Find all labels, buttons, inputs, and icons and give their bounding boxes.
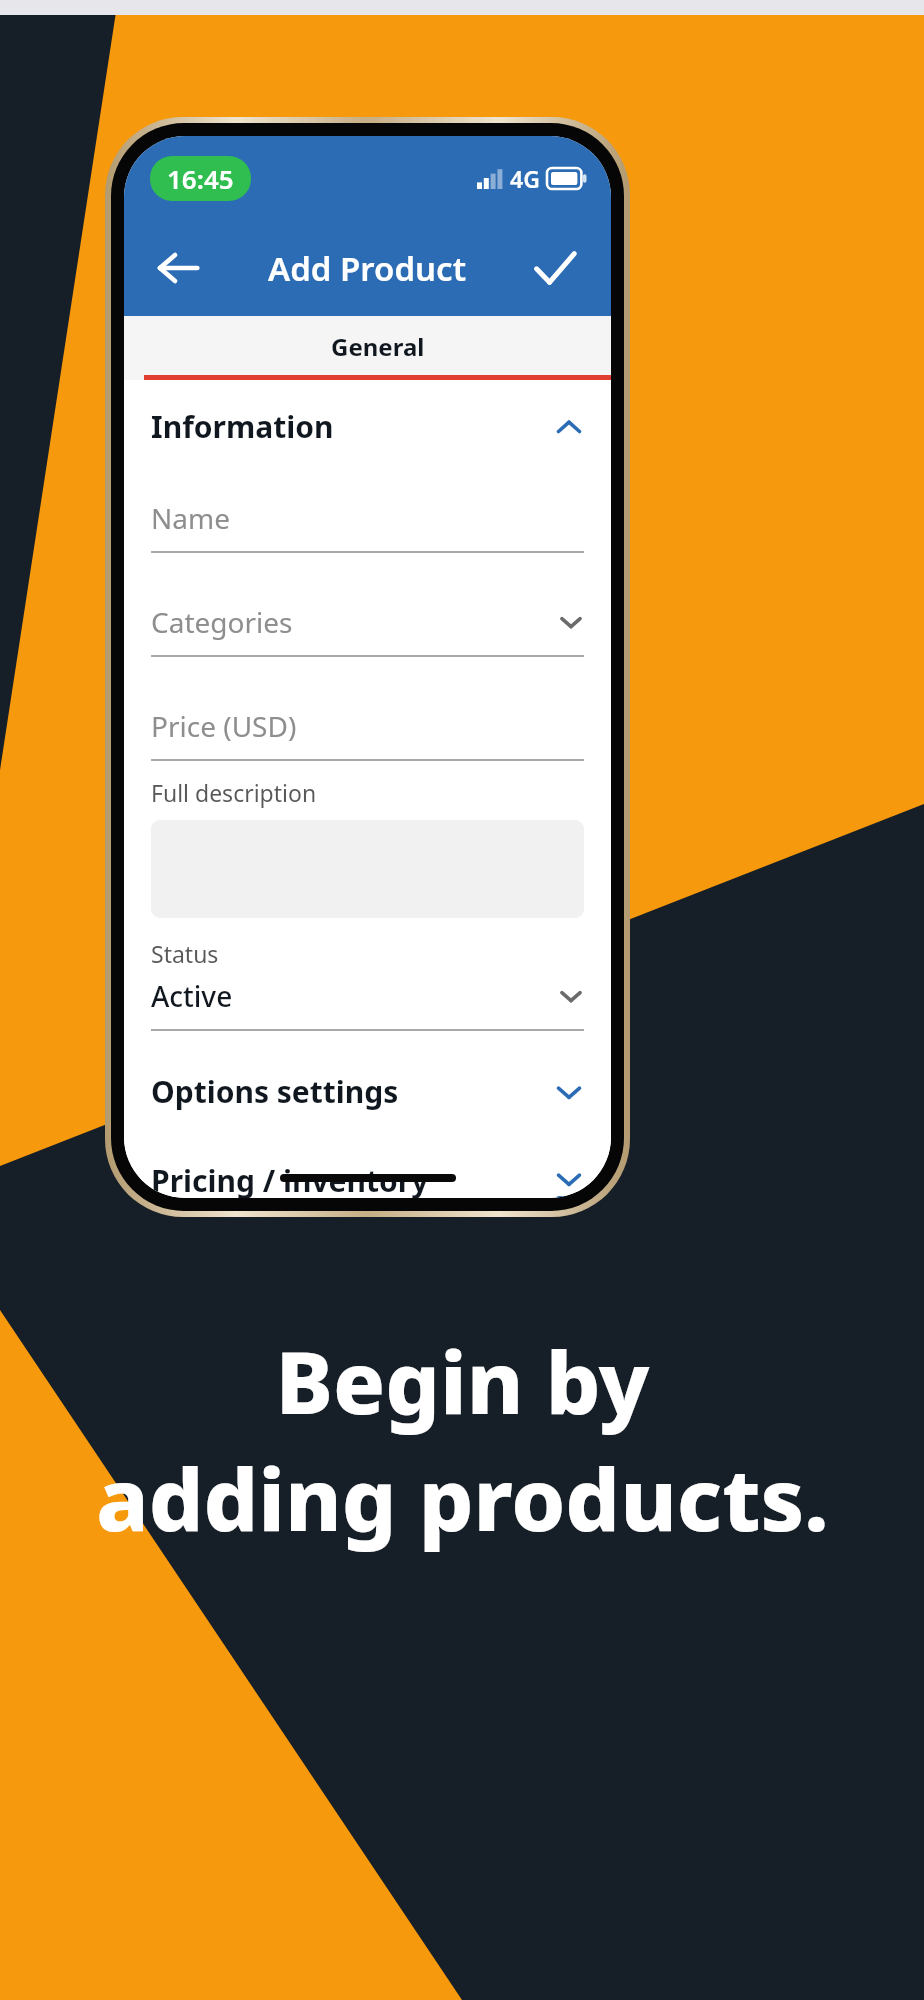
button[interactable]: Categories — [151, 603, 584, 657]
button[interactable]: Save — [513, 226, 597, 310]
staticText: Status — [151, 938, 219, 969]
staticText: Active — [151, 977, 558, 1015]
button[interactable]: Price (USD) — [151, 707, 584, 761]
button[interactable]: Options settings — [151, 1071, 584, 1112]
staticText: Price (USD) — [151, 707, 584, 745]
staticText: Categories — [151, 603, 558, 641]
staticText: Begin by — [275, 1322, 650, 1439]
staticText: Options settings — [151, 1071, 554, 1112]
staticText: Pricing / inventory — [151, 1160, 554, 1198]
staticText: Add Product — [268, 246, 467, 291]
button[interactable]: General — [144, 316, 611, 380]
staticText: 4G — [510, 163, 540, 194]
staticText: Name — [151, 499, 584, 537]
button[interactable]: Active — [151, 977, 584, 1015]
staticText: Full description — [151, 777, 317, 808]
button[interactable]: Name — [151, 499, 584, 553]
staticText: Information — [151, 406, 554, 447]
button[interactable]: Information — [151, 406, 584, 447]
staticText: 16:45 — [167, 161, 234, 196]
staticText: General — [331, 330, 425, 363]
button[interactable]: Back — [136, 226, 220, 310]
staticText: adding products. — [96, 1439, 829, 1556]
button[interactable]: Pricing / inventory — [151, 1160, 584, 1198]
